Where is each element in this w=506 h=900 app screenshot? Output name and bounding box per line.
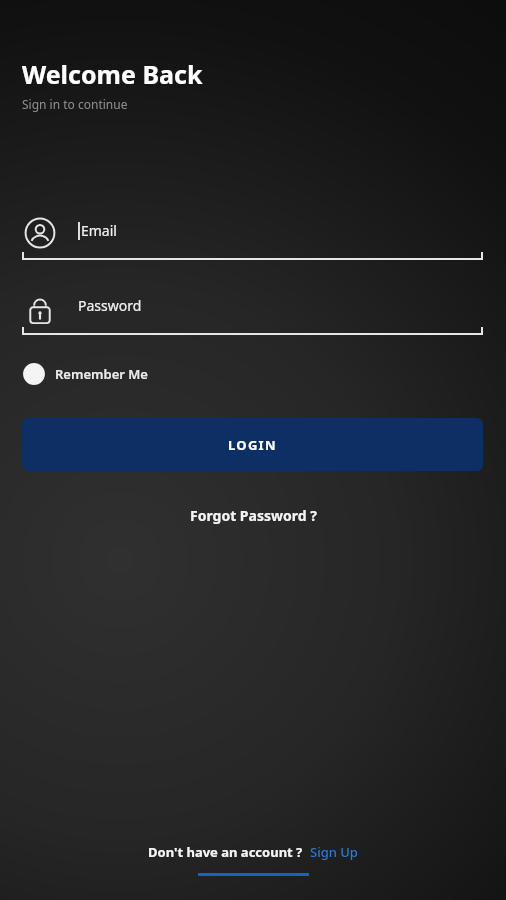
button[interactable]: Remember Me — [20, 359, 150, 389]
staticText: LOGIN — [228, 436, 277, 454]
staticText: Password — [78, 296, 142, 315]
staticText: Sign Up — [310, 843, 358, 861]
other: Password — [22, 290, 58, 326]
button[interactable]: Password — [0, 282, 506, 348]
staticText: Welcome Back — [22, 57, 203, 91]
staticText: Sign in to continue — [22, 96, 128, 112]
button[interactable]: LOGIN — [22, 418, 483, 471]
staticText: Remember Me — [55, 365, 148, 383]
button[interactable]: Email — [0, 207, 506, 273]
other: Email — [22, 215, 58, 251]
staticText: Forgot Password ? — [190, 506, 317, 525]
staticText: Don't have an account ? — [148, 843, 303, 861]
staticText: Email — [81, 221, 117, 240]
button[interactable]: Sign Up — [310, 843, 358, 861]
button[interactable]: Forgot Password ? — [178, 500, 329, 531]
